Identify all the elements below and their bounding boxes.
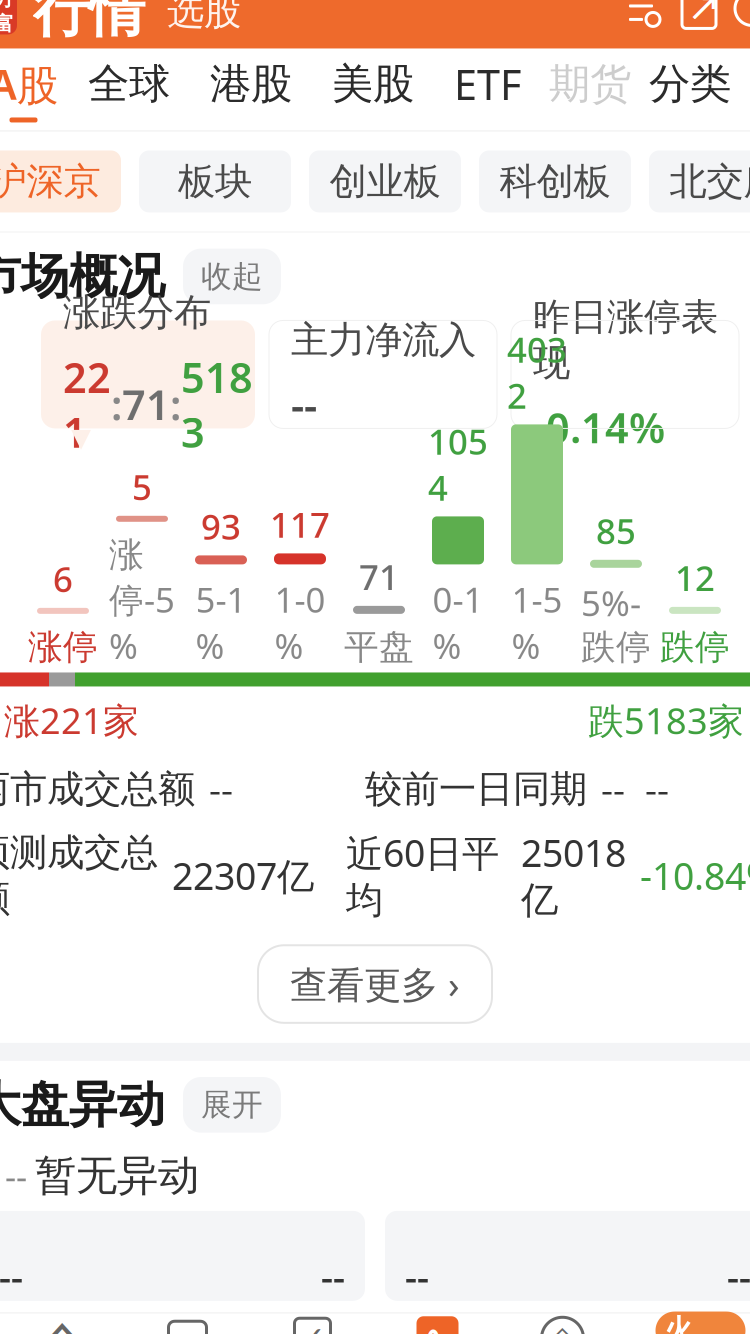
- staticText: -- --: [601, 764, 669, 814]
- button[interactable]: ⌣: [125, 1314, 250, 1334]
- button[interactable]: 创业板: [309, 150, 461, 212]
- staticText: -10.84%: [640, 851, 750, 900]
- staticText: 4032: [507, 326, 567, 418]
- staticText: 选股: [167, 0, 241, 34]
- staticText: --: [0, 1251, 23, 1301]
- staticText: --: [291, 377, 317, 432]
- staticText: 71: [122, 377, 170, 432]
- staticText: 北交所: [669, 158, 750, 204]
- staticText: --: [5, 1153, 27, 1199]
- button[interactable]: 选股: [145, 0, 241, 34]
- staticText: 展开: [201, 1086, 263, 1124]
- button[interactable]: Share: [671, 0, 727, 37]
- staticText: 12: [675, 555, 715, 601]
- button[interactable]: 主力净流入: [269, 320, 497, 428]
- staticText: 科创板: [499, 158, 610, 204]
- staticText: 暂无异动: [35, 1150, 199, 1201]
- button[interactable]: 市场概况: [0, 232, 750, 320]
- button[interactable]: ETF: [434, 56, 541, 122]
- staticText: 收起: [201, 258, 263, 295]
- staticText: +: [676, 1312, 699, 1334]
- staticText: 沪深京: [0, 158, 100, 204]
- staticText: 大盘异动: [0, 1075, 165, 1134]
- button[interactable]: 自选设置: [619, 0, 671, 37]
- staticText: 近60日平均: [346, 828, 499, 923]
- staticText: --: [321, 1251, 345, 1301]
- staticText: A股: [0, 56, 58, 111]
- staticText: 跌停: [660, 626, 730, 668]
- staticText: 71: [359, 554, 399, 600]
- staticText: 1-5%: [511, 576, 562, 668]
- staticText: 25018亿: [521, 828, 626, 923]
- staticText: 221: [63, 349, 111, 459]
- button[interactable]: 北交所: [649, 150, 750, 212]
- staticText: 分类: [649, 59, 731, 109]
- staticText: 5: [132, 464, 152, 510]
- staticText: :: [111, 377, 122, 432]
- staticText: ◇: [549, 1319, 576, 1334]
- staticText: ⌂: [43, 1303, 82, 1334]
- button[interactable]: 涨跌分布: [41, 320, 255, 428]
- staticText: 1054: [428, 418, 488, 510]
- staticText: 两市成交总额: [0, 766, 195, 812]
- button[interactable]: 美股: [312, 59, 434, 120]
- staticText: 5183: [181, 349, 253, 459]
- staticText: 较前一日同期: [365, 766, 587, 812]
- staticText: ↗: [687, 0, 721, 29]
- staticText: 板块: [178, 158, 252, 204]
- staticText: ⌣: [176, 1321, 199, 1334]
- staticText: ∿: [422, 1317, 453, 1334]
- button[interactable]: ◇: [500, 1314, 625, 1334]
- staticText: 涨跌分布: [63, 290, 211, 335]
- staticText: ▾: [71, 414, 91, 459]
- staticText: 主力净流入: [291, 317, 476, 363]
- staticText: :: [170, 377, 181, 432]
- staticText: 5-1%: [195, 576, 246, 668]
- staticText: ✓: [299, 1320, 326, 1334]
- staticText: 93: [201, 503, 241, 549]
- button[interactable]: 大盘异动: [0, 1061, 750, 1149]
- staticText: 平盘: [344, 626, 414, 668]
- staticText: 港股: [210, 59, 292, 109]
- staticText: 0-1%: [432, 576, 483, 668]
- staticText: 昨日涨停表现: [533, 294, 718, 386]
- button[interactable]: 全球: [68, 59, 190, 120]
- button[interactable]: 分类: [639, 59, 741, 120]
- staticText: 市场概况: [0, 247, 165, 306]
- staticText: 东方 财富: [0, 0, 14, 36]
- staticText: 涨221家: [4, 696, 139, 744]
- button[interactable]: Search: [727, 0, 750, 37]
- button[interactable]: A股: [0, 56, 68, 122]
- staticText: 涨停-5%: [109, 534, 175, 668]
- staticText: --: [405, 1251, 429, 1301]
- button[interactable]: ⌂: [0, 1314, 125, 1334]
- button[interactable]: 昨日涨停表现: [511, 320, 739, 428]
- staticText: 跌5183家: [588, 696, 744, 744]
- button[interactable]: 港股: [190, 59, 312, 120]
- staticText: 火: [664, 1312, 693, 1334]
- staticText: 美股: [332, 59, 414, 109]
- button[interactable]: ∿: [375, 1314, 500, 1334]
- button[interactable]: 科创板: [479, 150, 631, 212]
- staticText: -0.14%: [533, 400, 665, 455]
- staticText: 1-0%: [274, 576, 325, 668]
- button[interactable]: 板块: [139, 150, 291, 212]
- button[interactable]: +: [625, 1314, 750, 1334]
- staticText: 行情: [33, 0, 145, 46]
- button[interactable]: 查看更多 ›: [258, 945, 492, 1023]
- staticText: 期货: [549, 59, 631, 109]
- staticText: 全球: [88, 59, 170, 109]
- staticText: --: [209, 764, 233, 814]
- staticText: 117: [270, 501, 330, 547]
- staticText: 涨停: [28, 626, 98, 668]
- button[interactable]: 期货: [541, 59, 639, 120]
- button[interactable]: 沪深京: [0, 150, 121, 212]
- button[interactable]: 行情: [17, 0, 145, 46]
- staticText: --: [727, 1251, 750, 1301]
- staticText: ETF: [454, 56, 521, 111]
- staticText: 创业板: [329, 158, 440, 204]
- button[interactable]: ✓: [250, 1314, 375, 1334]
